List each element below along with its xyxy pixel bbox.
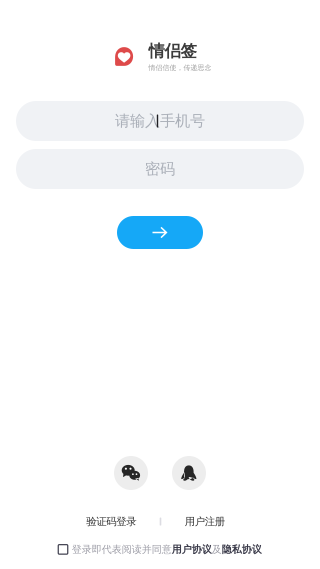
staticText: 登录即代表阅读并同意 bbox=[72, 543, 172, 556]
button[interactable]: 登录 bbox=[117, 216, 203, 249]
button[interactable]: 同意用户协议 bbox=[58, 545, 72, 554]
button[interactable]: 微信登录 bbox=[114, 456, 148, 490]
staticText: 及 bbox=[212, 543, 222, 556]
staticText: 情侣信使，传递思念 bbox=[148, 63, 211, 72]
button[interactable]: 手机号输入框 bbox=[16, 101, 304, 141]
button[interactable]: 用户注册 bbox=[161, 512, 248, 531]
button[interactable]: 密码输入框 bbox=[16, 149, 304, 189]
button[interactable]: 用户协议 bbox=[172, 543, 212, 556]
staticText: 请输入手机号 bbox=[115, 111, 205, 130]
staticText: 验证码登录 bbox=[86, 515, 136, 528]
button[interactable]: 验证码登录 bbox=[63, 512, 160, 531]
staticText: 用户注册 bbox=[185, 515, 225, 528]
staticText: 用户协议 bbox=[172, 543, 212, 556]
button[interactable]: 隐私协议 bbox=[222, 543, 262, 556]
staticText: 情侣签 bbox=[148, 41, 196, 61]
staticText: 密码 bbox=[145, 159, 175, 178]
button[interactable]: QQ 登录 bbox=[172, 456, 206, 490]
staticText: 隐私协议 bbox=[222, 543, 262, 556]
